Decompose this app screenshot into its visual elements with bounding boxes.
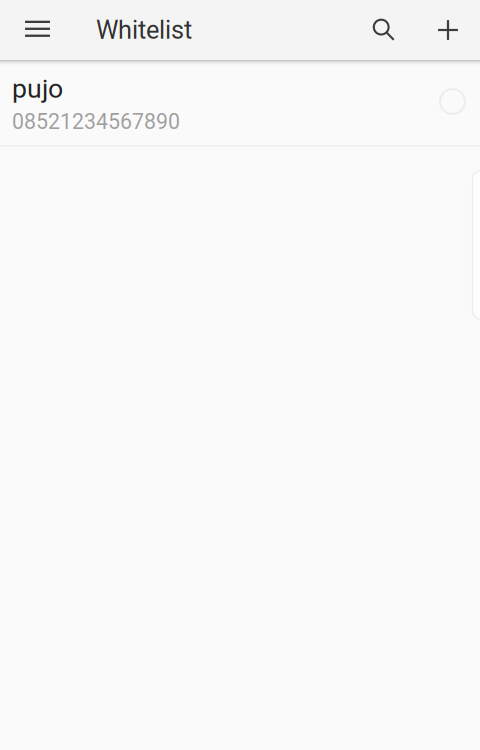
button[interactable]: pujo (0, 60, 480, 147)
button[interactable]: Search (353, 0, 416, 60)
staticText: pujo (12, 73, 63, 104)
button[interactable]: Open navigation menu (0, 0, 75, 60)
staticText: 08521234567890 (12, 109, 180, 134)
button[interactable]: Add to whitelist (416, 0, 480, 60)
staticText: Whitelist (96, 15, 192, 45)
